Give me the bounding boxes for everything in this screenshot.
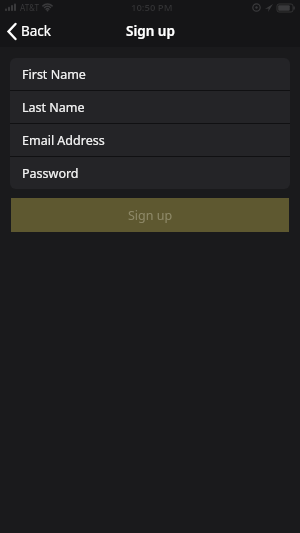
staticText: Password bbox=[22, 165, 79, 182]
button[interactable]: Back bbox=[7, 22, 52, 40]
staticText: Sign up bbox=[126, 22, 175, 40]
staticText: Sign up bbox=[128, 207, 173, 224]
button[interactable]: Sign up bbox=[11, 198, 289, 232]
staticText: Email Address bbox=[22, 132, 105, 149]
button[interactable]: Password bbox=[10, 157, 290, 189]
staticText: Last Name bbox=[22, 99, 85, 116]
staticText: 10:50 PM bbox=[131, 1, 173, 14]
staticText: Back bbox=[21, 22, 52, 40]
staticText: AT&T bbox=[20, 2, 39, 13]
staticText: First Name bbox=[22, 66, 86, 83]
button[interactable]: First Name bbox=[10, 58, 290, 90]
button[interactable]: Email Address bbox=[10, 124, 290, 156]
button[interactable]: Last Name bbox=[10, 91, 290, 123]
